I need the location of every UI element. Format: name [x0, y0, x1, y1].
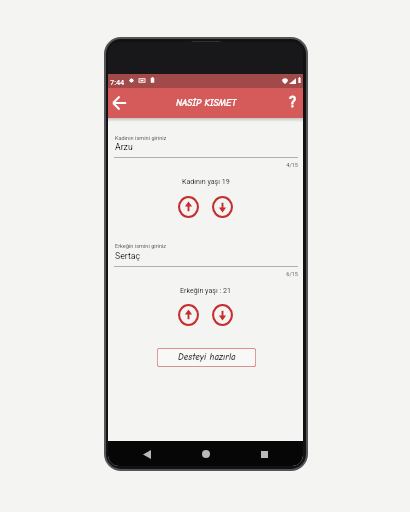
staticText: Kadının yaşı 19 [182, 177, 230, 185]
staticText: ? [289, 93, 297, 111]
staticText: Erkeğin yaşı : 21 [180, 286, 231, 294]
staticText: Kadının ismini giriniz [115, 135, 167, 142]
staticText: 4/15 [114, 162, 298, 169]
button[interactable]: Recent apps [255, 445, 273, 463]
staticText: NASİP KISMET [176, 98, 237, 109]
staticText: Sertaç [115, 251, 141, 261]
staticText: Arzu [115, 142, 133, 152]
button[interactable]: Decrease age [212, 196, 233, 218]
staticText: 6/15 [114, 271, 298, 278]
button[interactable]: Desteyi hazırla [157, 348, 256, 367]
staticText: Desteyi hazırla [178, 352, 236, 363]
staticText: Erkeğin ismini giriniz [115, 243, 167, 250]
button[interactable]: Back [108, 92, 130, 114]
button[interactable]: Increase age [178, 196, 199, 218]
button[interactable]: Decrease age [212, 304, 233, 326]
button[interactable]: Back [138, 445, 156, 463]
button[interactable]: Help [284, 93, 302, 111]
staticText: 7:44 [110, 78, 125, 87]
button[interactable]: Home [197, 445, 215, 463]
button[interactable]: Increase age [178, 304, 199, 326]
